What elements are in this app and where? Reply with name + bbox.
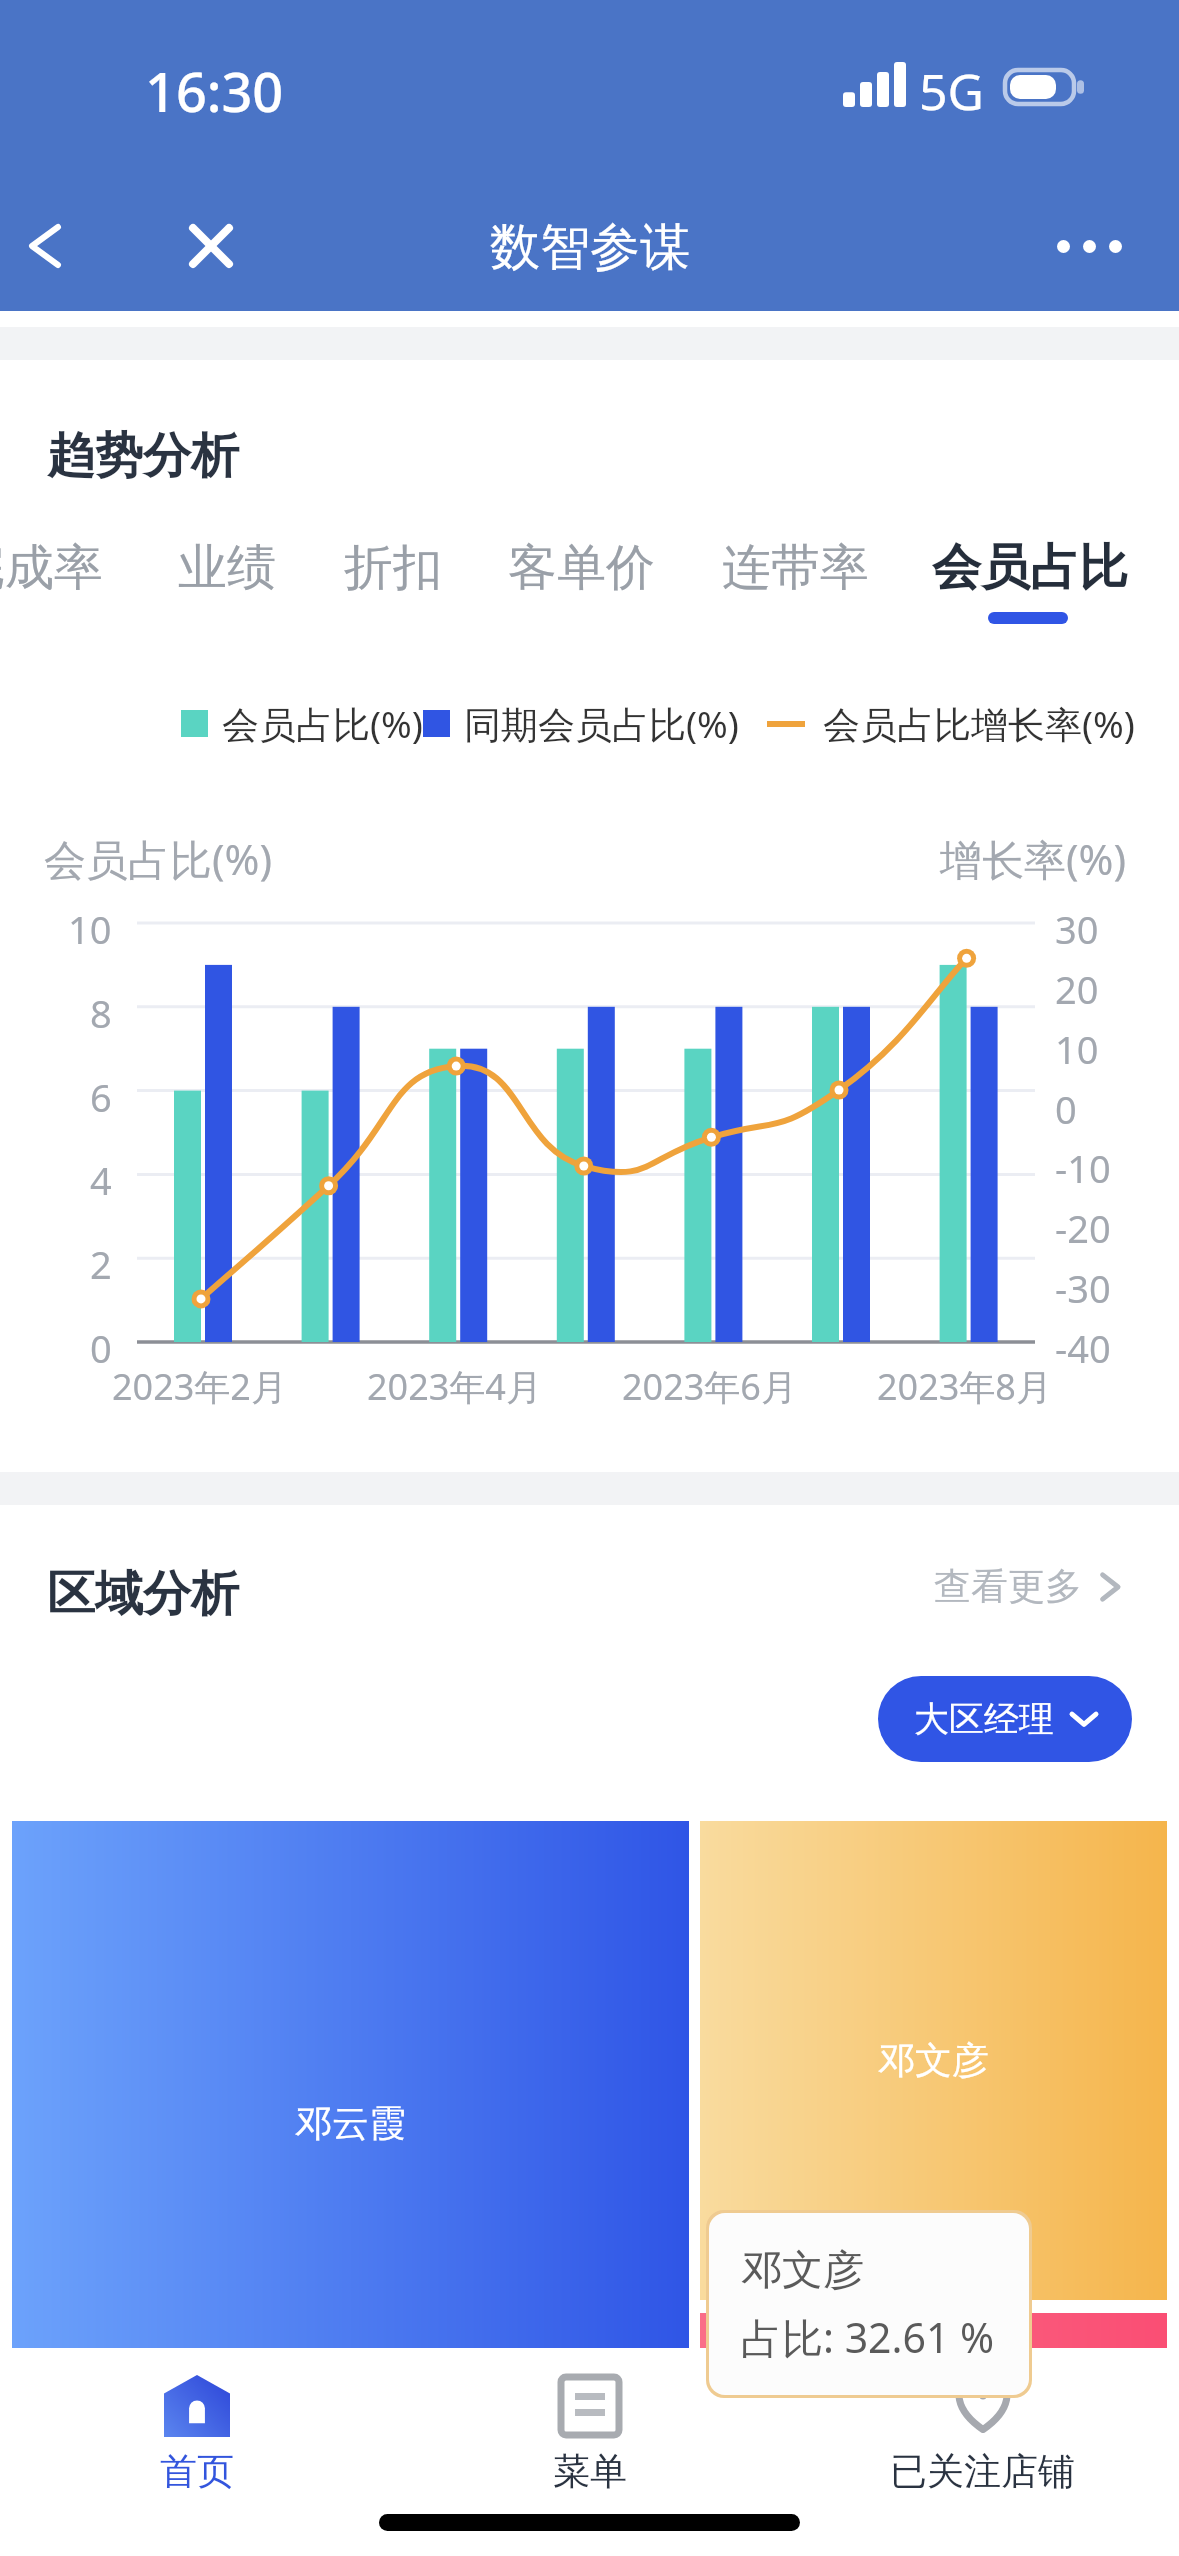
staticText: 0 [90,1322,112,1374]
button[interactable]: 连带率 [722,527,869,609]
button[interactable]: 首页 [0,2348,393,2495]
button[interactable]: More options [1044,215,1134,277]
staticText: 连带率 [722,537,869,599]
staticText: 4 [90,1154,112,1206]
staticText: 30 [1055,903,1099,955]
staticText: 增长率(%) [940,830,1127,887]
button[interactable] [700,2313,1167,2351]
staticText: 同期会员占比(%) [464,698,739,749]
button[interactable]: 折扣 [344,527,442,609]
staticText: 趋势分析 [47,426,239,486]
button[interactable]: 完成率 [0,527,103,609]
staticText: 邓云霞 [295,2100,406,2147]
button[interactable]: 查看更多 [934,1563,1122,1610]
staticText: 8 [90,987,112,1039]
staticText: 2023年4月 [367,1362,542,1411]
staticText: 查看更多 [934,1563,1082,1610]
button[interactable]: 客单价 [508,527,655,609]
staticText: 会员占比 [932,537,1128,599]
staticText: 已关注店铺 [890,2448,1075,2495]
staticText: 10 [68,903,112,955]
staticText: 邓文彦 [741,2245,864,2297]
staticText: 邓文彦 [878,2037,989,2084]
staticText: 首页 [160,2448,234,2495]
staticText: 会员占比(%) [44,830,273,887]
staticText: 2023年6月 [622,1362,797,1411]
staticText: -20 [1055,1202,1111,1254]
staticText: 会员占比增长率(%) [823,698,1135,749]
staticText: 完成率 [0,537,103,599]
staticText: 20 [1055,963,1099,1015]
staticText: -40 [1055,1322,1111,1374]
staticText: 菜单 [553,2448,627,2495]
button[interactable]: 菜单 [393,2348,786,2495]
button[interactable]: 邓云霞 [12,1821,689,2348]
button[interactable]: 邓文彦 [700,1821,1167,2300]
button[interactable]: Back [14,215,76,277]
staticText: 折扣 [344,537,442,599]
staticText: 区域分析 [47,1564,239,1624]
button[interactable]: 业绩 [178,527,276,609]
staticText: 业绩 [178,537,276,599]
staticText: 5G [919,57,984,125]
staticText: 6 [90,1071,112,1123]
staticText: 大区经理 [914,1697,1054,1741]
staticText: 2023年8月 [877,1362,1052,1411]
staticText: 占比: 32.61 % [741,2309,995,2365]
button[interactable]: 大区经理 [878,1676,1132,1762]
staticText: 16:30 [145,54,284,128]
staticText: 0 [1055,1083,1077,1135]
staticText: 10 [1055,1023,1099,1075]
staticText: 2 [90,1238,112,1290]
button[interactable]: 已关注店铺 [786,2348,1179,2495]
staticText: -10 [1055,1142,1111,1194]
staticText: 数智参谋 [490,216,690,279]
staticText: 2023年2月 [112,1362,287,1411]
button[interactable]: 会员占比 [932,527,1128,609]
button[interactable]: Close [180,215,242,277]
staticText: 客单价 [508,537,655,599]
staticText: -30 [1055,1262,1111,1314]
staticText: 会员占比(%) [222,698,423,749]
